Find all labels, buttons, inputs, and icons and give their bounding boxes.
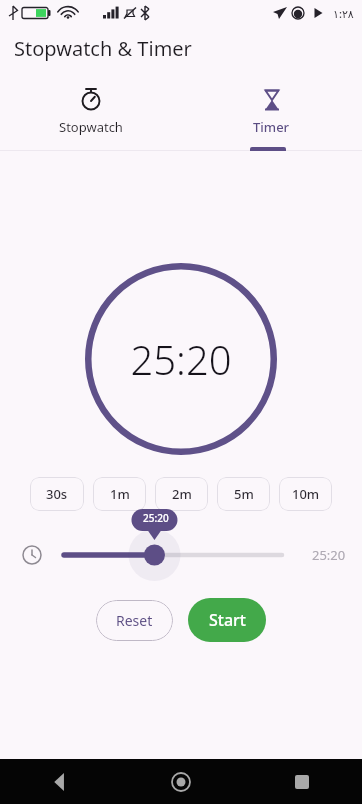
button[interactable]: Duration [18,541,46,569]
button[interactable]: 30s [30,477,84,511]
staticText: 30s [46,485,68,503]
staticText: ١:٢٨ [333,6,354,21]
button[interactable]: Home [120,759,241,804]
staticText: Stopwatch & Timer [14,35,192,62]
button[interactable]: Start [188,598,266,642]
staticText: 25:20 [312,546,346,564]
button[interactable]: 10m [279,477,332,511]
staticText: Start [209,609,246,631]
button[interactable]: Timer [181,71,362,151]
staticText: 10m [292,485,320,503]
button[interactable]: Back [0,759,120,804]
staticText: Stopwatch [59,118,123,136]
button[interactable]: Reset [96,600,173,641]
staticText: 25:20 [143,511,169,525]
button[interactable]: Stopwatch [0,71,181,151]
staticText: Timer [253,118,290,136]
staticText: 1m [110,485,130,503]
button[interactable]: 2m [155,477,208,511]
staticText: Reset [116,611,153,630]
button[interactable]: 5m [217,477,270,511]
button[interactable]: Recents [241,759,362,804]
staticText: 25:20 [130,332,232,386]
button[interactable]: 25:20 [56,511,286,579]
button[interactable]: 1m [93,477,146,511]
staticText: 2m [172,485,192,503]
staticText: 5m [234,485,254,503]
